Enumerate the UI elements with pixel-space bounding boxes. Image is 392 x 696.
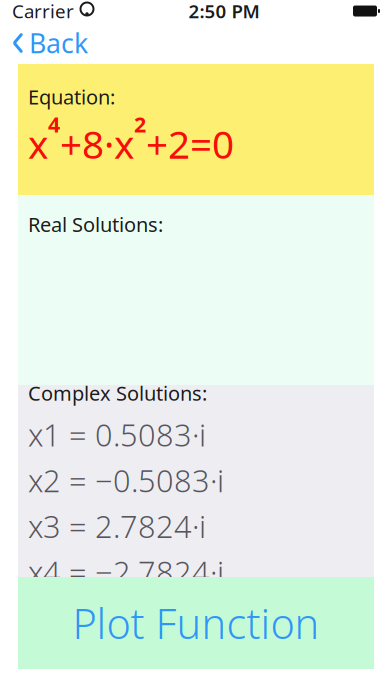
- staticText: x4 = −2.7824·i: [28, 551, 224, 592]
- staticText: +8·x: [60, 118, 134, 169]
- staticText: 4: [48, 110, 60, 138]
- staticText: x: [28, 118, 48, 169]
- staticText: Equation:: [28, 83, 115, 110]
- button[interactable]: Back: [0, 23, 100, 63]
- staticText: Carrier: [12, 0, 74, 23]
- staticText: 2:50 PM: [188, 0, 259, 23]
- staticText: Complex Solutions:: [28, 380, 207, 406]
- staticText: Real Solutions:: [28, 211, 163, 238]
- staticText: +2=0: [146, 118, 234, 169]
- staticText: x1 = 0.5083·i: [28, 414, 206, 455]
- staticText: Plot Function: [72, 596, 319, 650]
- staticText: 2: [134, 110, 146, 138]
- staticText: x2 = −0.5083·i: [28, 460, 224, 501]
- staticText: Back: [29, 25, 88, 61]
- staticText: x3 = 2.7824·i: [28, 506, 206, 546]
- button[interactable]: Plot Function: [18, 577, 374, 669]
